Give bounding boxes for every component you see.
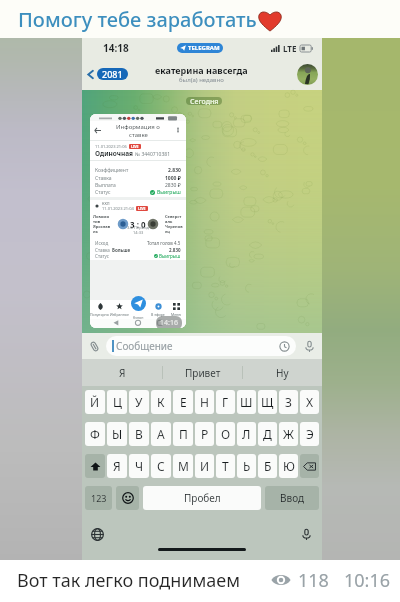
staticText: Ну <box>276 366 289 380</box>
staticText: № 3440710381 <box>135 151 171 158</box>
button[interactable]: В <box>129 422 149 446</box>
staticText: ставке <box>129 131 148 139</box>
staticText: Д <box>263 426 272 442</box>
button[interactable]: В эфире <box>148 300 167 319</box>
button[interactable]: Популярное <box>90 300 110 319</box>
button[interactable]: Е <box>173 390 193 414</box>
staticText: Ставка <box>95 175 112 182</box>
button[interactable]: Привет <box>163 359 242 386</box>
button[interactable]: Избранное <box>110 300 129 319</box>
staticText: 2830 ₽ <box>165 182 181 189</box>
button[interactable]: И <box>195 454 214 478</box>
button[interactable]: Back <box>82 64 131 84</box>
staticText: У <box>135 394 143 410</box>
button[interactable]: К <box>151 390 171 414</box>
button[interactable]: Я <box>107 454 127 478</box>
button[interactable]: Ы <box>107 422 127 446</box>
button[interactable]: Р <box>195 422 214 446</box>
button[interactable]: П <box>173 422 193 446</box>
button[interactable]: Информация о <box>90 114 186 328</box>
staticText: П <box>179 426 188 442</box>
staticText: Я <box>119 366 126 380</box>
staticText: Ы <box>112 426 123 442</box>
button[interactable]: 123 <box>85 486 112 510</box>
button[interactable]: Пробел <box>143 486 261 510</box>
button[interactable]: Я <box>82 359 162 386</box>
button[interactable]: Profile photo <box>297 64 318 85</box>
staticText: Локомотив <box>93 214 111 224</box>
staticText: Информация о <box>116 123 160 131</box>
button[interactable]: Ф <box>85 422 105 446</box>
button[interactable]: Backspace <box>300 454 319 478</box>
button[interactable]: А <box>151 422 171 446</box>
button[interactable]: Т <box>216 454 235 478</box>
button[interactable]: Ю <box>279 454 298 478</box>
button[interactable]: О <box>216 422 235 446</box>
button[interactable]: Change language <box>91 528 104 541</box>
staticText: екатерина навсегда <box>155 64 248 76</box>
other: Schedule message <box>279 341 290 352</box>
button[interactable]: Emoji <box>116 486 139 510</box>
staticText: LIVE <box>138 206 146 211</box>
staticText: был(а) недавно <box>179 76 224 84</box>
staticText: С <box>157 458 165 474</box>
staticText: Статус <box>95 189 111 196</box>
button[interactable]: С <box>151 454 171 478</box>
staticText: 2.830 <box>169 247 181 253</box>
button[interactable]: З <box>279 390 298 414</box>
button[interactable]: Ь <box>237 454 256 478</box>
staticText: Б <box>264 458 272 474</box>
staticText: Ю <box>283 458 295 474</box>
staticText: 118 <box>298 568 329 593</box>
button[interactable]: Й <box>85 390 105 414</box>
button[interactable]: Х <box>300 390 319 414</box>
staticText: Помогу тебе заработать <box>18 6 257 33</box>
button[interactable]: У <box>129 390 149 414</box>
staticText: Ш <box>240 394 253 410</box>
button[interactable]: Attach <box>89 341 100 352</box>
staticText: LTE <box>283 43 297 54</box>
staticText: Коэффициент <box>95 167 129 174</box>
staticText: Вот так легко поднимаем <box>17 568 240 593</box>
button[interactable]: Э <box>300 422 319 446</box>
staticText: Череповец <box>165 224 183 234</box>
button[interactable]: Купон <box>129 300 148 319</box>
button[interactable]: Shift <box>85 454 105 478</box>
staticText: Выплата <box>95 182 116 189</box>
staticText: Е <box>180 394 187 410</box>
staticText: Ставка <box>95 247 110 253</box>
staticText: Щ <box>261 394 274 410</box>
staticText: 2081 <box>102 68 123 80</box>
staticText: КХЛ <box>102 201 110 206</box>
button[interactable]: Record voice message <box>303 340 316 353</box>
staticText: Привет <box>185 366 221 380</box>
button[interactable]: Б <box>258 454 277 478</box>
button[interactable]: М <box>173 454 193 478</box>
staticText: Популярное <box>90 312 110 319</box>
staticText: 11.01.2023 21:04 <box>102 206 134 211</box>
staticText: Т <box>222 458 229 474</box>
staticText: Больше <box>112 247 131 253</box>
button[interactable]: Г <box>216 390 235 414</box>
button[interactable]: Ц <box>107 390 127 414</box>
staticText: 3 : 0 <box>130 219 146 230</box>
button[interactable]: Ш <box>237 390 256 414</box>
button[interactable]: Л <box>237 422 256 446</box>
staticText: Тотал голов 4.5 <box>147 240 181 246</box>
staticText: Ж <box>283 426 294 442</box>
button[interactable]: Д <box>258 422 277 446</box>
button[interactable]: Щ <box>258 390 277 414</box>
staticText: Й <box>90 394 100 410</box>
button[interactable]: Ну <box>243 359 322 386</box>
button[interactable]: Меню <box>167 300 186 319</box>
button[interactable]: Н <box>195 390 214 414</box>
button[interactable]: Ввод <box>265 486 319 510</box>
staticText: Ч <box>135 458 144 474</box>
staticText: Ь <box>243 458 251 474</box>
button[interactable]: Сообщение <box>106 336 296 356</box>
button[interactable]: Ч <box>129 454 149 478</box>
button[interactable]: Voice input <box>300 528 313 541</box>
staticText: Северсталь <box>165 214 183 224</box>
button[interactable]: Ж <box>279 422 298 446</box>
staticText: 14:33 <box>133 230 144 235</box>
